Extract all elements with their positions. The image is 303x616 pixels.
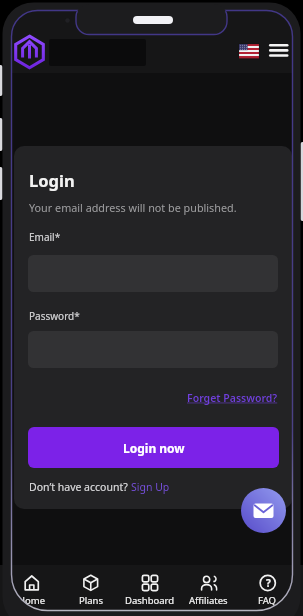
staticText: Dashboard <box>125 594 175 607</box>
staticText: Email* <box>29 230 61 244</box>
button[interactable] <box>239 44 259 58</box>
button[interactable]: ? <box>238 565 297 616</box>
staticText: Home <box>18 594 46 607</box>
button[interactable]: Dashboard <box>120 565 179 616</box>
button[interactable]: Home <box>2 565 61 616</box>
staticText: Password* <box>29 309 80 323</box>
staticText: Login now <box>123 440 185 456</box>
button[interactable]: Forget Password? <box>187 391 278 405</box>
button[interactable]: Plans <box>61 565 120 616</box>
staticText: Plans <box>79 594 103 607</box>
button[interactable]: Sign Up <box>131 480 170 494</box>
staticText: FAQ <box>258 594 277 607</box>
button[interactable]: Login now <box>28 427 279 468</box>
staticText: Login <box>29 169 75 191</box>
button[interactable] <box>14 35 45 69</box>
staticText: Don’t have account? <box>29 480 131 494</box>
staticText: Affiliates <box>189 594 228 607</box>
button[interactable] <box>269 43 290 60</box>
staticText: Your email address will not be published… <box>29 200 237 215</box>
staticText: ? <box>266 576 271 590</box>
button[interactable]: Affiliates <box>179 565 238 616</box>
button[interactable] <box>241 488 286 533</box>
